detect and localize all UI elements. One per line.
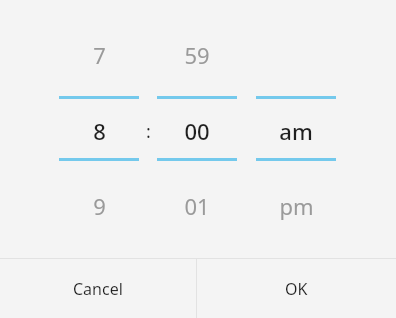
- button[interactable]: pm: [241, 186, 351, 226]
- button[interactable]: 00: [142, 111, 252, 151]
- staticText: 7: [93, 40, 106, 70]
- staticText: 9: [93, 191, 106, 221]
- staticText: 8: [93, 116, 106, 146]
- staticText: :: [146, 119, 151, 144]
- button[interactable]: OK: [197, 259, 396, 318]
- staticText: Cancel: [73, 278, 123, 300]
- button[interactable]: 8: [44, 111, 154, 151]
- button[interactable]: 59: [142, 35, 252, 75]
- staticText: 00: [184, 116, 210, 146]
- staticText: pm: [279, 191, 314, 221]
- button[interactable]: 01: [142, 186, 252, 226]
- button[interactable]: 7: [44, 35, 154, 75]
- staticText: OK: [285, 278, 308, 300]
- button[interactable]: 9: [44, 186, 154, 226]
- button[interactable]: Cancel: [0, 259, 196, 318]
- staticText: am: [279, 116, 313, 146]
- button[interactable]: am: [241, 111, 351, 151]
- staticText: 01: [184, 191, 210, 221]
- staticText: 59: [184, 40, 210, 70]
